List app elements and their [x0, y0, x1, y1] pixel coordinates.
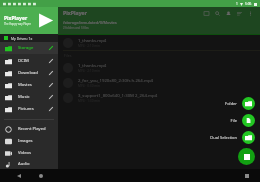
staticText: 3_support1_800x640_1:30M 2_264.mp4	[78, 92, 158, 98]
button[interactable]: Music	[0, 91, 58, 103]
staticText: MP4 · 1:30 min	[78, 99, 101, 103]
staticText: My Drives: 1x	[11, 36, 33, 41]
button[interactable]: 2_for_you_1920x80_2:30fs h.264.mp4	[58, 75, 260, 90]
staticText: Storage	[18, 45, 48, 51]
button[interactable]: More	[246, 9, 255, 18]
button[interactable]: Recent Played	[0, 123, 58, 135]
button[interactable]: Search	[213, 9, 222, 18]
staticText: 2_for_you_1920x80_2:30fs h.264.mp4	[78, 77, 154, 83]
button[interactable]: Images	[0, 135, 58, 147]
button[interactable]: 1_thanks.mp4	[58, 35, 260, 50]
staticText: DCIM	[18, 58, 48, 64]
button[interactable]: Recents	[242, 171, 252, 181]
button[interactable]: DCIM	[0, 55, 58, 67]
button[interactable]: Folder	[225, 97, 255, 110]
staticText: 5:06	[245, 2, 252, 6]
button[interactable]: Storage	[0, 42, 58, 54]
button[interactable]: Close menu	[238, 148, 255, 165]
button[interactable]: 3_support1_800x640_1:30M 2_264.mp4	[58, 90, 260, 105]
button[interactable]: Download	[0, 67, 58, 79]
button[interactable]: 1_thanks.mp4	[58, 60, 260, 75]
staticText: 2 folders and 5 files	[63, 26, 89, 30]
button[interactable]: File	[230, 114, 255, 127]
other: Edit Download	[48, 70, 54, 76]
other: Edit DCIM	[48, 58, 54, 64]
staticText: The Happy way Player	[4, 22, 31, 26]
staticText: Images	[18, 138, 54, 144]
staticText: MP4 · 2:10 min	[78, 44, 101, 48]
staticText: Audio	[18, 161, 54, 167]
staticText: Recent Played	[18, 126, 54, 132]
other: Edit Music	[48, 94, 54, 100]
staticText: Folder	[225, 101, 237, 106]
button[interactable]: Add	[224, 9, 233, 18]
other: Edit Storage	[48, 45, 54, 51]
staticText: 1_thanks.mp4	[78, 62, 107, 68]
staticText: /storage/emulated/0/Movies	[63, 20, 117, 25]
staticText: 1	[236, 2, 238, 6]
staticText: PixPlayer	[4, 15, 28, 22]
button[interactable]: Dual Selection	[210, 131, 255, 144]
staticText: File	[230, 118, 237, 123]
button[interactable]: Audio	[0, 159, 58, 169]
button[interactable]: Movies	[0, 79, 58, 91]
button[interactable]: Sort	[235, 9, 244, 18]
button[interactable]: Back	[14, 171, 24, 181]
button[interactable]: Cast	[202, 9, 211, 18]
other: Edit Movies	[48, 82, 54, 88]
staticText: Videos	[18, 150, 54, 156]
staticText: Pictures	[18, 106, 48, 112]
staticText: Music	[18, 94, 48, 100]
staticText: MP4 · 0:30 min	[78, 84, 101, 88]
button[interactable]: Home	[36, 171, 46, 181]
staticText: Download	[18, 70, 48, 76]
button[interactable]: Pictures	[0, 103, 58, 115]
staticText: Movies	[18, 82, 48, 88]
button[interactable]: Videos	[0, 147, 58, 159]
other: Edit Pictures	[48, 106, 54, 112]
staticText: Dual Selection	[210, 135, 237, 140]
staticText: MP4 · 2:10 min	[78, 69, 101, 73]
staticText: 1_thanks.mp4	[78, 37, 107, 43]
staticText: PixPlayer	[63, 9, 88, 16]
staticText: Files	[64, 53, 72, 58]
